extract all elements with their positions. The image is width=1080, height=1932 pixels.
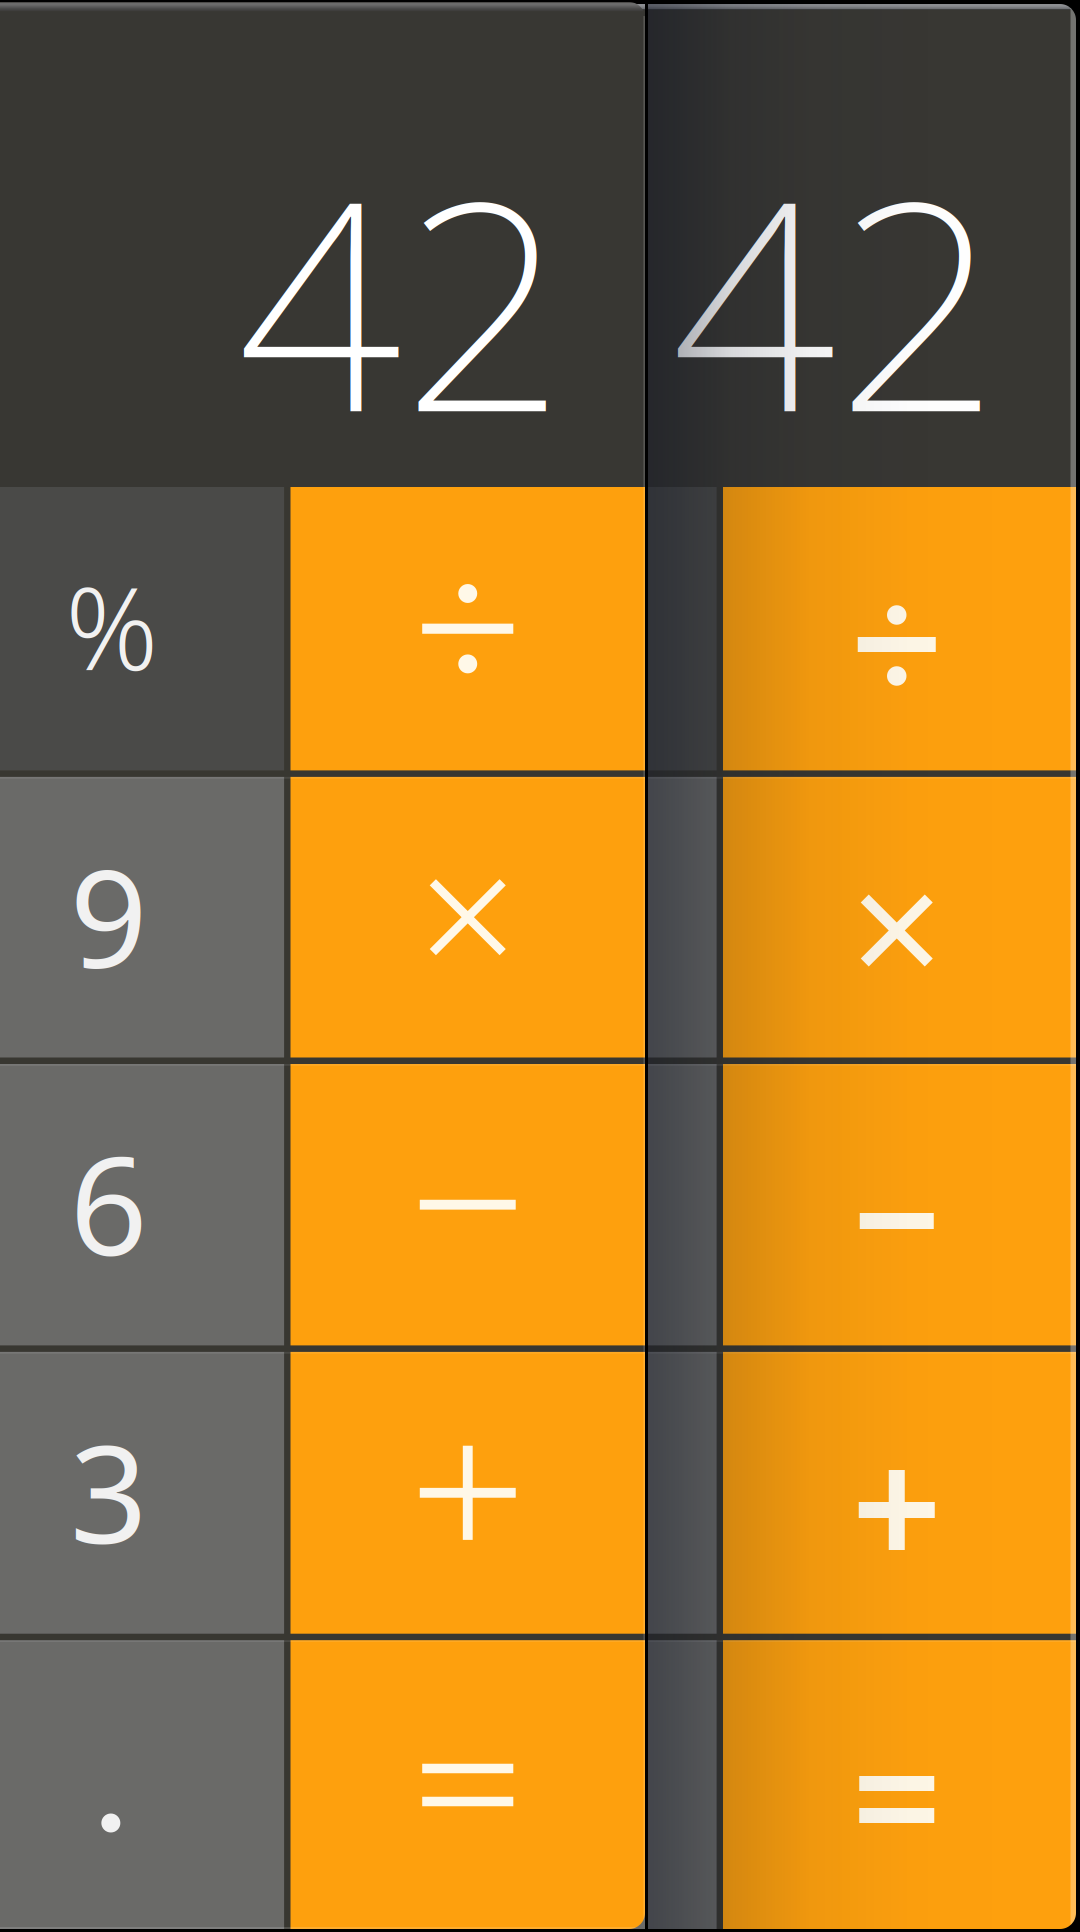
- button[interactable]: Multiply: [290, 777, 645, 1057]
- button[interactable]: Six: [608, 1064, 717, 1345]
- button[interactable]: Equals: [723, 1640, 1076, 1929]
- staticText: 42: [671, 107, 1001, 491]
- button[interactable]: Decimal: [608, 1640, 717, 1929]
- button[interactable]: Plus: [723, 1352, 1076, 1634]
- button[interactable]: Three: [0, 1352, 284, 1634]
- button[interactable]: Minus: [290, 1064, 645, 1345]
- button[interactable]: Decimal: [0, 1640, 284, 1929]
- button[interactable]: Divide: [290, 487, 645, 770]
- staticText: 42: [237, 107, 567, 491]
- staticText: 9: [70, 825, 148, 1005]
- button[interactable]: Divide: [723, 487, 1076, 770]
- button[interactable]: Percent: [0, 487, 284, 770]
- button[interactable]: Minus: [723, 1064, 1076, 1345]
- button[interactable]: Three: [608, 1352, 717, 1634]
- staticText: 6: [70, 1112, 148, 1293]
- button[interactable]: Nine: [608, 777, 717, 1057]
- staticText: %: [65, 550, 158, 702]
- button[interactable]: Six: [0, 1064, 284, 1345]
- button[interactable]: Nine: [0, 777, 284, 1057]
- button[interactable]: Percent: [608, 487, 717, 770]
- button[interactable]: Plus: [290, 1352, 645, 1634]
- staticText: 3: [70, 1400, 148, 1581]
- button[interactable]: Multiply: [723, 777, 1076, 1057]
- button[interactable]: Equals: [290, 1640, 645, 1929]
